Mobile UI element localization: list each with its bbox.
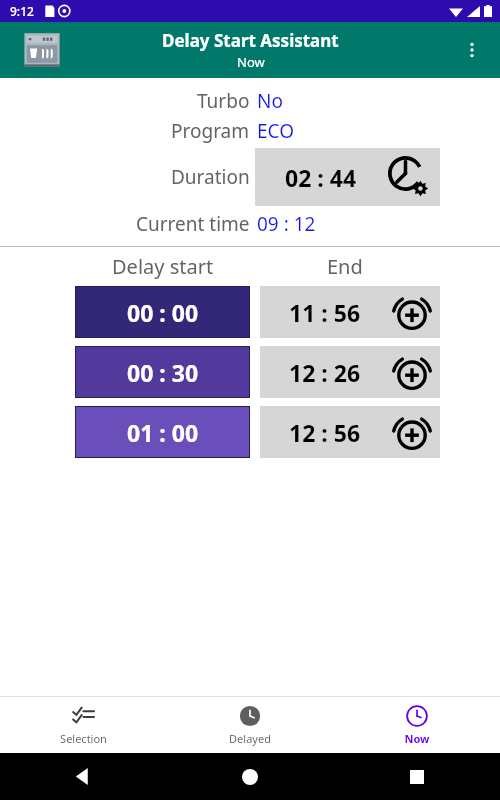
staticText: Turbo [197,88,250,114]
staticText: 02 : 44 [285,162,357,193]
button[interactable]: 12 : 56 [260,406,440,458]
button[interactable]: Delayed [166,697,333,753]
staticText: 9:12 [10,3,34,19]
staticText: Delay start [112,253,214,280]
staticText: Now [404,731,430,746]
button[interactable]: More options [452,30,492,70]
staticText: Program [171,118,250,144]
staticText: Duration [171,164,250,190]
staticText: 00 : 30 [127,357,199,388]
staticText: End [327,253,363,280]
staticText: Now [237,53,265,71]
staticText: 12 : 56 [289,417,361,448]
other: Add alarm [390,290,434,334]
staticText: Current time [136,211,250,237]
staticText: 00 : 00 [127,297,199,328]
staticText: Delayed [229,731,271,746]
staticText: 01 : 00 [127,417,199,448]
button[interactable]: 00 : 00 [75,286,250,338]
button[interactable]: 11 : 56 [260,286,440,338]
button[interactable]: 02 : 44 [255,148,440,206]
button[interactable]: Selection [0,697,166,753]
staticText: 09 : 12 [257,211,316,237]
staticText: Selection [60,731,107,746]
button[interactable]: App icon [22,30,62,70]
button[interactable]: 01 : 00 [75,406,250,458]
staticText: 11 : 56 [289,297,361,328]
staticText: ECO [257,118,295,144]
staticText: Delay Start Assistant [162,29,339,52]
other: Add alarm [390,350,434,394]
staticText: 12 : 26 [289,357,361,388]
button[interactable]: 00 : 30 [75,346,250,398]
button[interactable]: Now [333,697,500,753]
other: Add alarm [390,410,434,454]
staticText: No [257,88,283,114]
button[interactable]: 12 : 26 [260,346,440,398]
